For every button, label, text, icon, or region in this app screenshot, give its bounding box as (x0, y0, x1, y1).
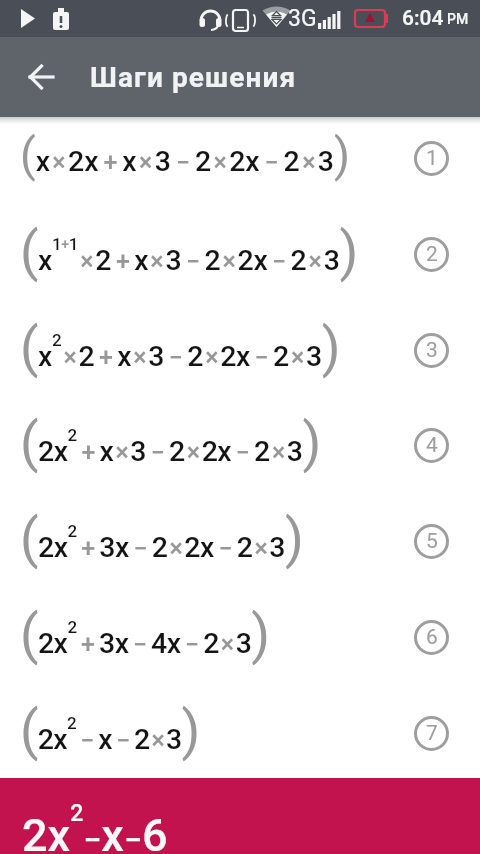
staticText: 4 (426, 433, 438, 458)
staticText: (x1+1 × 2 + x × 3 − 2 × 2x − 2 × 3) (20, 220, 358, 283)
staticText: (2x2 + 3x − 4x − 2 × 3) (20, 603, 270, 666)
button[interactable]: (2x2 + 3x − 2 × 2x − 2 × 3) (0, 493, 480, 589)
button[interactable]: (2x2 + 3x − 4x − 2 × 3) (0, 589, 480, 685)
staticText: (2x2 + x × 3 − 2 × 2x − 2 × 3) (20, 411, 321, 474)
button[interactable]: (2x2 + x × 3 − 2 × 2x − 2 × 3) (0, 397, 480, 493)
button[interactable]: (2x2 − x − 2 × 3) (0, 685, 480, 778)
staticText: (x2 × 2 + x × 3 − 2 × 2x − 2 × 3) (20, 316, 341, 379)
button[interactable]: (x1+1 × 2 + x × 3 − 2 × 2x − 2 × 3) (0, 206, 480, 302)
staticText: Шаги решения (90, 61, 297, 94)
button[interactable]: 2x2−x−6 (0, 778, 480, 854)
staticText: (2x2 − x − 2 × 3) (20, 699, 200, 762)
button[interactable] (14, 49, 70, 105)
staticText: 1 (426, 146, 438, 171)
staticText: 3G (288, 5, 317, 32)
staticText: 2x2−x−6 (22, 800, 168, 854)
staticText: 3 (426, 338, 438, 363)
button[interactable]: (x × 2x + x × 3 − 2 × 2x − 2 × 3) (0, 117, 480, 206)
staticText: 2 (426, 242, 438, 267)
staticText: PM (447, 11, 469, 27)
staticText: 6 (426, 625, 438, 650)
staticText: (2x2 + 3x − 2 × 2x − 2 × 3) (20, 507, 304, 570)
staticText: 6:04 (402, 6, 444, 31)
button[interactable]: (x2 × 2 + x × 3 − 2 × 2x − 2 × 3) (0, 302, 480, 398)
staticText: (x × 2x + x × 3 − 2 × 2x − 2 × 3) (20, 128, 350, 182)
staticText: 7 (426, 721, 438, 746)
staticText: 5 (426, 529, 438, 554)
